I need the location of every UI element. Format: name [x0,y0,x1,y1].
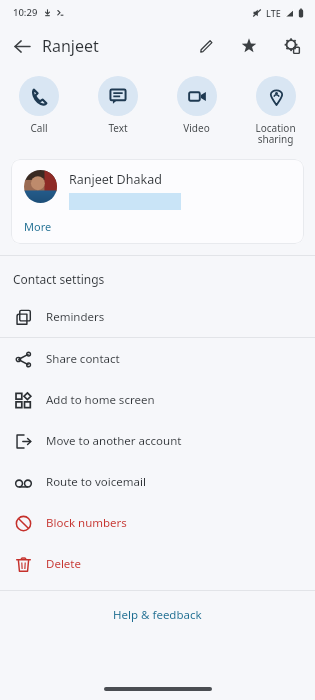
button[interactable]: Video [157,74,236,137]
button[interactable]: Route to voicemail [0,461,315,502]
staticText: Help & feedback [113,607,202,623]
button[interactable]: Text [78,74,157,137]
staticText: Video [183,121,210,135]
staticText: Text [108,121,128,135]
staticText: Ranjeet Dhakad [69,171,162,188]
button[interactable]: Block numbers [0,502,315,543]
staticText: Block numbers [46,515,127,531]
staticText: Add to home screen [46,392,155,408]
button[interactable]: More [20,217,56,236]
button[interactable]: Favorite [233,30,265,62]
staticText: Route to voicemail [46,474,146,490]
button[interactable]: Move to another account [0,420,315,461]
staticText: More [24,219,52,234]
staticText: LTE [266,7,281,19]
staticText: Delete [46,556,81,572]
staticText: Reminders [46,309,105,325]
button[interactable]: Help & feedback [103,604,212,626]
button[interactable]: Add to home screen [0,379,315,420]
button[interactable]: Settings [276,30,308,62]
staticText: Ranjeet [42,35,99,57]
button[interactable]: Location sharing [236,74,315,148]
button[interactable]: Share contact [0,338,315,379]
button[interactable]: Back [6,30,38,62]
staticText: Contact settings [13,271,105,287]
button[interactable]: Edit contact [190,30,222,62]
button[interactable]: Reminders [0,296,315,337]
staticText: Call [30,121,48,135]
button[interactable]: Call [0,74,78,137]
staticText: Share contact [46,351,120,367]
staticText: 10:29 [13,6,38,19]
staticText: Move to another account [46,433,182,449]
button[interactable]: Delete [0,543,315,584]
staticText: Location sharing [255,121,296,146]
